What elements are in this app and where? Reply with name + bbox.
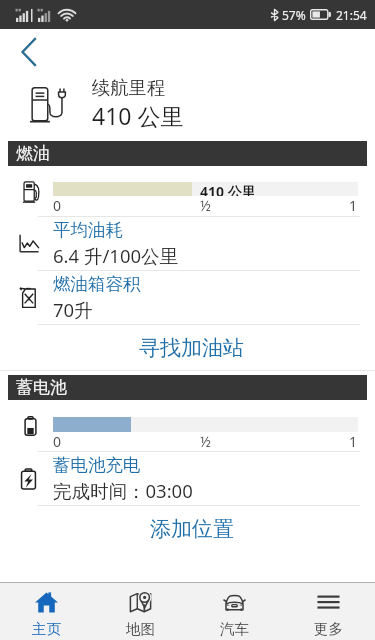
- staticText: 57%: [282, 7, 306, 23]
- staticText: 添加位置: [150, 516, 234, 542]
- button[interactable]: Back: [6, 29, 50, 75]
- staticText: 地图: [126, 620, 155, 638]
- button[interactable]: 汽车: [187, 583, 281, 640]
- staticText: ½: [200, 432, 211, 451]
- staticText: 0: [53, 196, 62, 215]
- staticText: 1: [349, 432, 358, 451]
- staticText: 燃油: [16, 143, 50, 164]
- button[interactable]: 寻找加油站: [0, 325, 375, 370]
- staticText: 完成时间：03:00: [53, 478, 193, 503]
- staticText: 410 公里: [200, 182, 256, 196]
- staticText: 21:54: [336, 7, 367, 23]
- staticText: 70升: [53, 297, 93, 322]
- staticText: 1: [349, 196, 358, 215]
- staticText: ½: [200, 196, 211, 215]
- button[interactable]: 平均油耗: [0, 217, 375, 271]
- button[interactable]: 蓄电池充电: [0, 452, 375, 506]
- button[interactable]: 地图: [93, 583, 187, 640]
- staticText: 汽车: [220, 620, 249, 638]
- staticText: 燃油箱容积: [53, 273, 141, 295]
- staticText: 410 公里: [92, 100, 184, 131]
- staticText: 蓄电池充电: [53, 454, 141, 476]
- staticText: 平均油耗: [53, 219, 123, 241]
- button[interactable]: 更多: [281, 583, 375, 640]
- staticText: 寻找加油站: [139, 335, 244, 361]
- staticText: 蓄电池: [16, 377, 67, 398]
- button[interactable]: 燃油箱容积: [0, 271, 375, 325]
- staticText: 更多: [314, 620, 343, 638]
- staticText: 0: [53, 432, 62, 451]
- button[interactable]: 主页: [0, 583, 93, 640]
- button[interactable]: 添加位置: [0, 506, 375, 551]
- staticText: 续航里程: [92, 76, 166, 99]
- staticText: 主页: [32, 620, 61, 638]
- staticText: 6.4 升/100公里: [53, 243, 179, 268]
